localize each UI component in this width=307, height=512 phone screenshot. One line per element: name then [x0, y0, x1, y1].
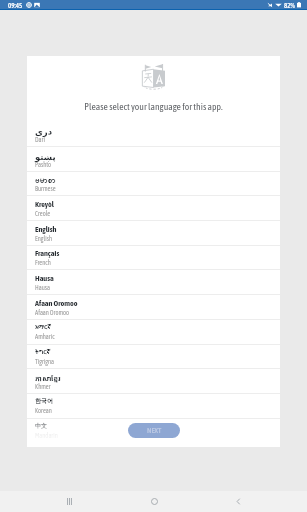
staticText: Amharic — [35, 333, 55, 340]
staticText: English — [35, 225, 57, 234]
staticText: Dari — [35, 136, 45, 143]
button[interactable]: ភាសាខ្មែរ — [27, 369, 280, 394]
staticText: دری — [35, 127, 53, 137]
staticText: Creole — [35, 210, 51, 217]
staticText: 09:45 — [8, 1, 23, 9]
staticText: Korean — [35, 407, 52, 414]
staticText: 82% — [284, 1, 295, 9]
button[interactable]: ဗမာစာ — [27, 171, 280, 196]
staticText: Khmer — [35, 383, 51, 390]
staticText: Kreyòl — [35, 200, 54, 209]
button[interactable]: Kreyòl — [27, 196, 280, 221]
staticText: ဗမာစာ — [35, 175, 56, 187]
button[interactable]: 中文 — [27, 418, 280, 443]
button[interactable]: NEXT — [128, 423, 180, 438]
button[interactable]: English — [27, 221, 280, 246]
button[interactable]: Afaan Oromoo — [27, 295, 280, 320]
staticText: አማርኛ — [35, 323, 52, 331]
staticText: 한국어 — [35, 397, 53, 405]
staticText: Pashto — [35, 161, 52, 168]
staticText: Please select your language for this app… — [84, 101, 223, 112]
staticText: Afaan Oromoo — [35, 299, 78, 308]
button[interactable]: دری — [27, 122, 280, 147]
button[interactable]: ትግርኛ — [27, 344, 280, 369]
button[interactable]: Recent apps — [54, 491, 84, 512]
staticText: Français — [35, 249, 60, 258]
staticText: NEXT — [147, 426, 162, 435]
staticText: Hausa — [35, 284, 50, 291]
staticText: English — [35, 235, 53, 242]
staticText: Afaan Oromoo — [35, 309, 70, 316]
staticText: Hausa — [35, 274, 54, 283]
button[interactable]: አማርኛ — [27, 319, 280, 344]
button[interactable]: Home — [139, 491, 169, 512]
staticText: Burmese — [35, 185, 56, 192]
staticText: ትግርኛ — [35, 348, 51, 356]
staticText: Mandarin — [35, 432, 58, 439]
staticText: ភាសាខ្មែរ — [35, 373, 61, 383]
button[interactable]: Back — [223, 491, 253, 512]
button[interactable]: 한국어 — [27, 393, 280, 418]
button[interactable]: Français — [27, 245, 280, 270]
staticText: French — [35, 259, 51, 266]
button[interactable]: پښتو — [27, 147, 280, 172]
staticText: 中文 — [35, 422, 47, 430]
button[interactable]: Hausa — [27, 270, 280, 295]
staticText: Tigrigna — [35, 358, 55, 365]
staticText: پښتو — [35, 152, 56, 162]
